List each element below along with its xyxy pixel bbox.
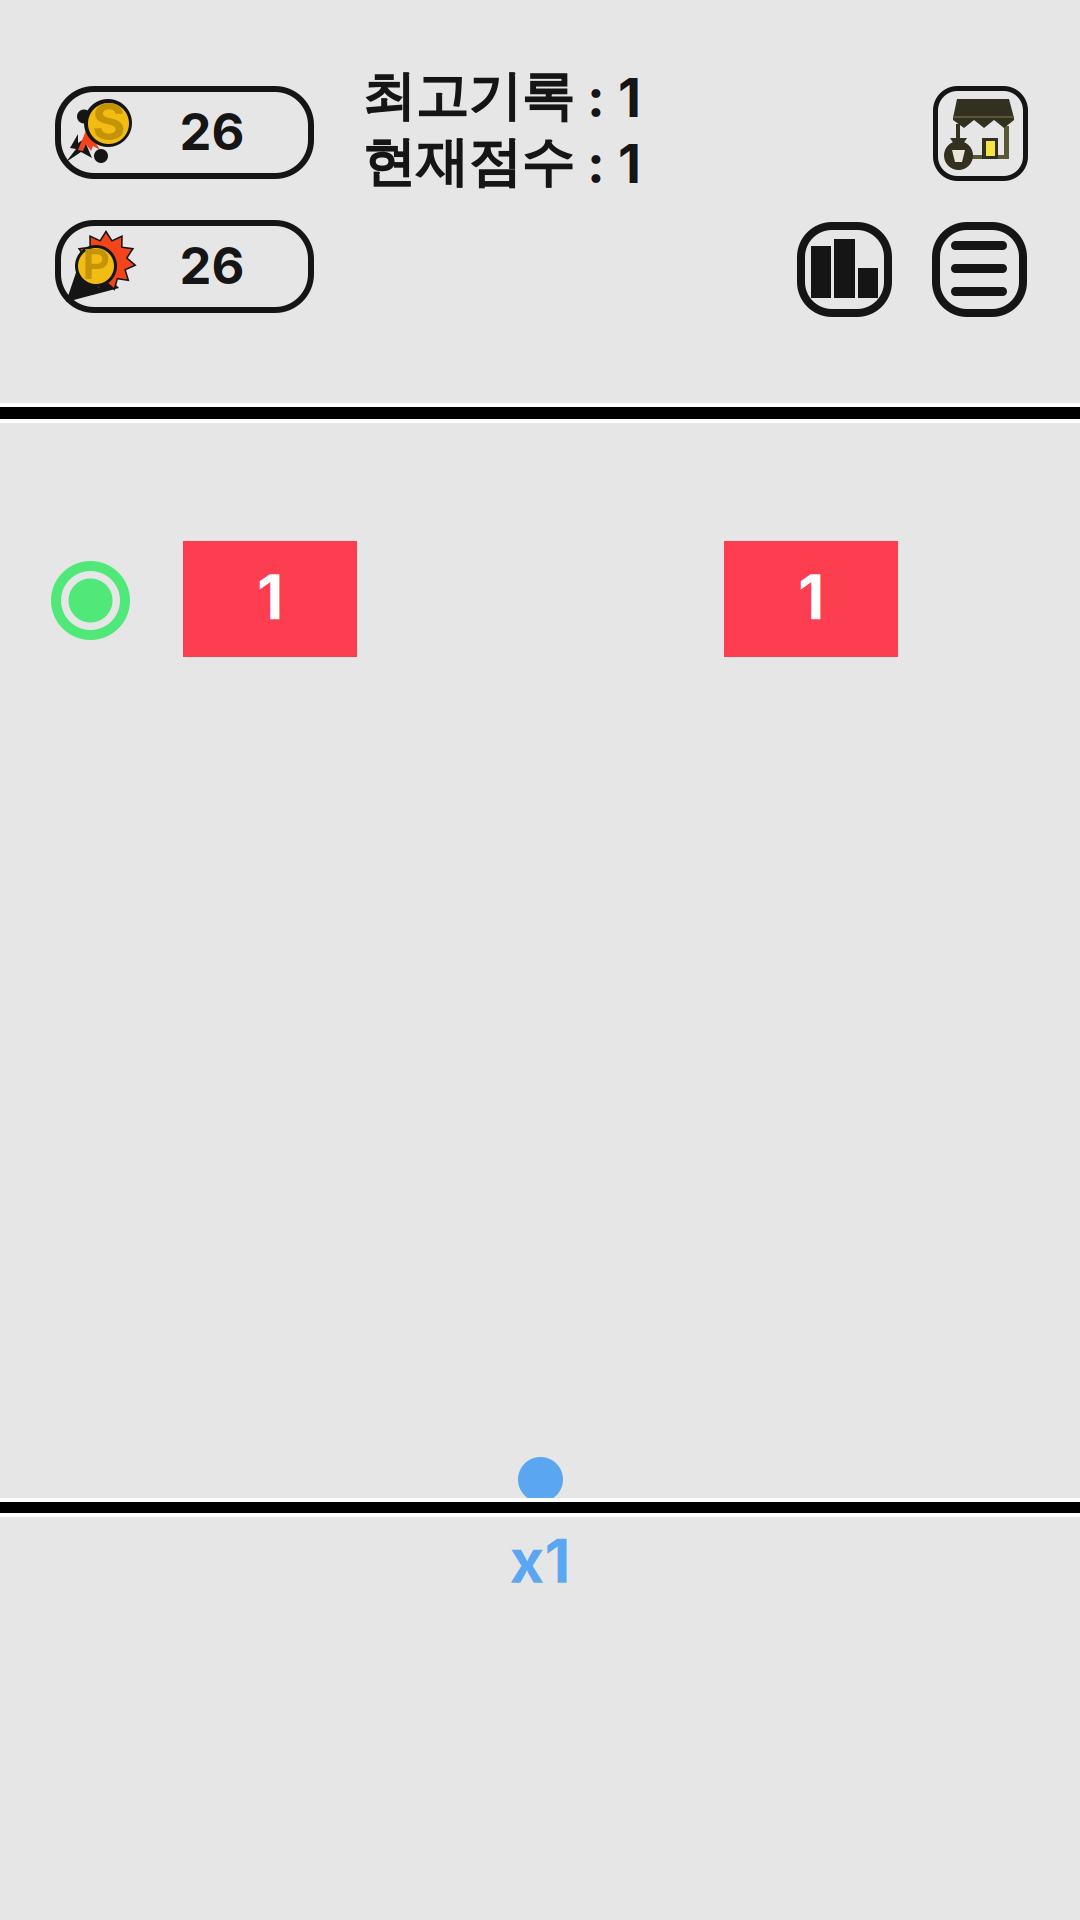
button[interactable]: Shop: [933, 86, 1028, 181]
staticText: 1: [798, 560, 824, 634]
staticText: 26: [179, 235, 244, 296]
button[interactable]: Statistics: [797, 222, 892, 317]
staticText: x1: [509, 1525, 570, 1597]
staticText: 최고기록 : 1: [362, 63, 641, 130]
button[interactable]: Points 26: [55, 220, 314, 313]
staticText: 현재점수 : 1: [362, 129, 641, 196]
staticText: P: [83, 239, 109, 289]
button[interactable]: Menu: [932, 222, 1027, 317]
staticText: S: [92, 91, 125, 152]
staticText: 1: [257, 560, 283, 634]
staticText: 26: [179, 101, 244, 162]
button[interactable]: Coins 26: [55, 86, 314, 179]
